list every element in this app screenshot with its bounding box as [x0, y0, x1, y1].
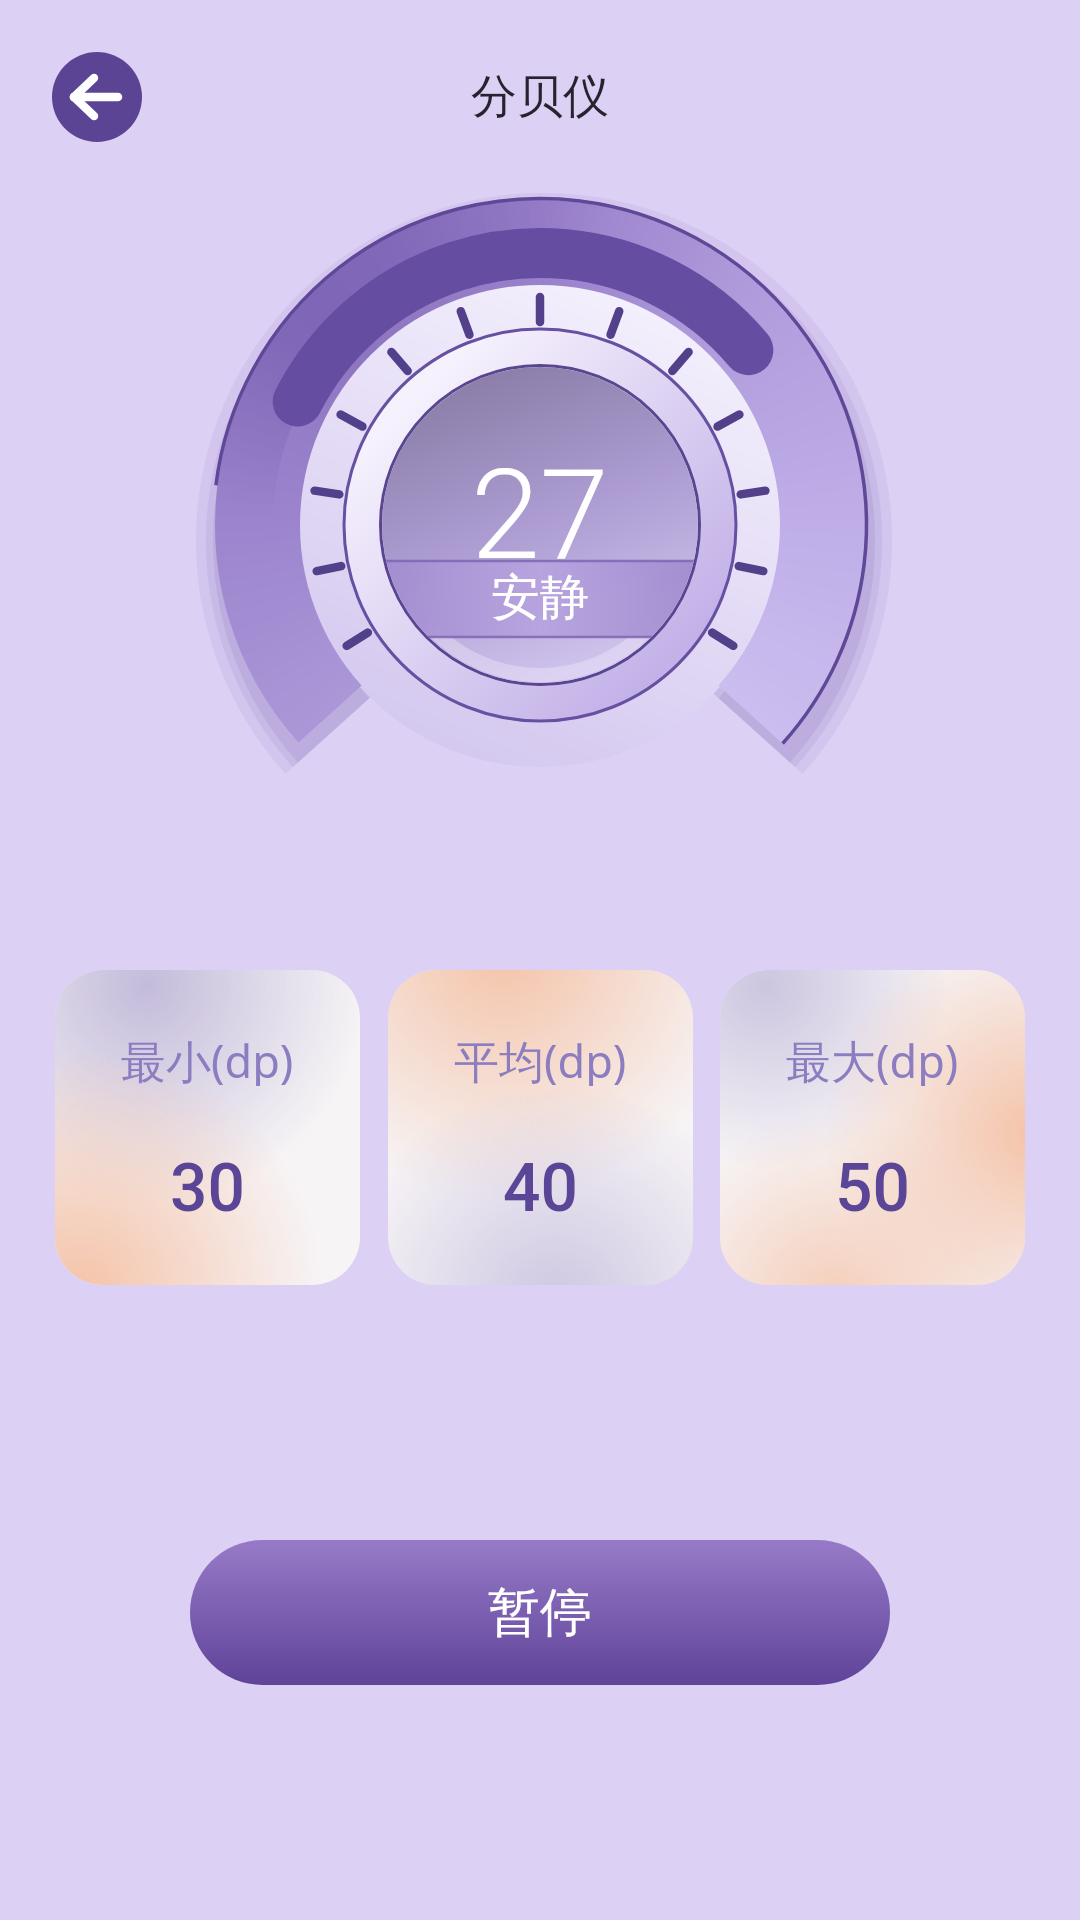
- staticText: 分贝仪: [471, 68, 609, 126]
- staticText: 安静: [491, 567, 589, 629]
- staticText: 30: [170, 1150, 246, 1227]
- staticText: 最大(dp): [786, 1030, 959, 1086]
- button[interactable]: [52, 52, 142, 142]
- button[interactable]: 最大(dp): [720, 970, 1025, 1285]
- button[interactable]: 暂停: [190, 1540, 890, 1685]
- staticText: 50: [835, 1150, 911, 1227]
- staticText: 暂停: [488, 1580, 592, 1646]
- staticText: 平均(dp): [454, 1030, 627, 1086]
- staticText: 40: [503, 1150, 579, 1227]
- staticText: 27: [471, 443, 609, 588]
- staticText: 最小(dp): [121, 1030, 294, 1086]
- button[interactable]: 最小(dp): [55, 970, 360, 1285]
- button[interactable]: 平均(dp): [388, 970, 693, 1285]
